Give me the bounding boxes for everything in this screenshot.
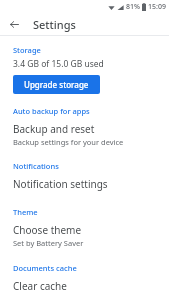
staticText: Auto backup for apps: [13, 106, 90, 116]
staticText: Backup settings for your device: [13, 137, 124, 147]
staticText: Upgrade storage: [24, 79, 89, 90]
staticText: 15:09: [148, 2, 166, 12]
button[interactable]: Clear cache: [0, 275, 169, 300]
staticText: Choose theme: [13, 223, 82, 237]
button[interactable]: Back: [4, 14, 24, 34]
staticText: Set by Battery Saver: [13, 238, 84, 248]
staticText: Notification settings: [13, 177, 108, 191]
staticText: 81%: [126, 2, 140, 12]
staticText: Documents cache: [13, 263, 77, 273]
staticText: Storage: [13, 45, 41, 55]
staticText: Clear cache: [13, 279, 67, 293]
staticText: Backup and reset: [13, 122, 95, 136]
button[interactable]: Choose theme: [0, 219, 169, 252]
button[interactable]: Upgrade storage: [13, 75, 100, 94]
staticText: Theme: [13, 207, 38, 217]
button[interactable]: Notification settings: [0, 173, 169, 195]
staticText: Notifications: [13, 161, 59, 171]
button[interactable]: Backup and reset: [0, 118, 169, 151]
staticText: 3.4 GB of 15.0 GB used: [13, 58, 104, 70]
staticText: Settings: [33, 17, 76, 32]
